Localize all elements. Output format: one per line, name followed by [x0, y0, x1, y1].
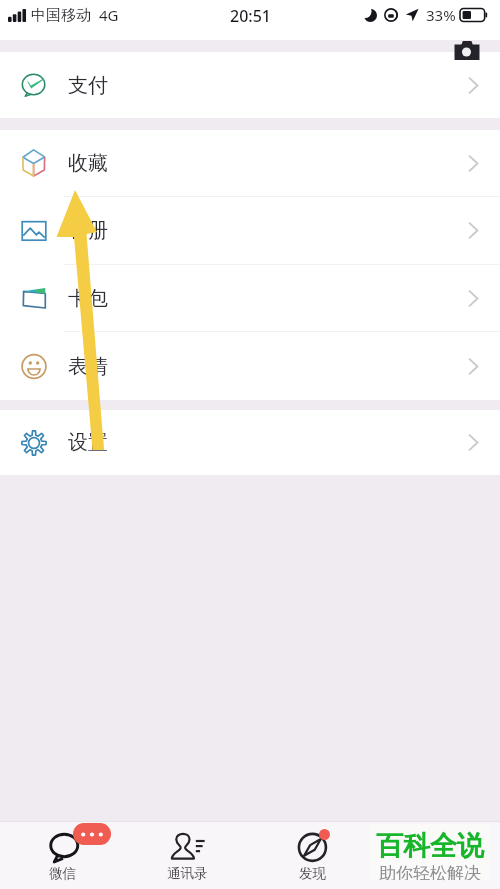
button[interactable]: 收藏 [0, 130, 500, 196]
button[interactable]: 设置 [0, 410, 500, 475]
staticText: 设置 [68, 430, 108, 455]
button[interactable]: Camera [454, 41, 480, 60]
staticText: 33% [426, 5, 456, 25]
staticText: 微信 [49, 865, 76, 882]
button[interactable]: 相册 [0, 197, 500, 264]
staticText: 4G [99, 5, 119, 25]
staticText: 通讯录 [167, 865, 208, 882]
staticText: 百科全说 [376, 829, 484, 863]
staticText: 我 [431, 865, 445, 882]
staticText: 卡包 [68, 286, 108, 311]
button[interactable]: 发现 [250, 821, 375, 889]
button[interactable]: 通讯录 [125, 821, 250, 889]
button[interactable]: 卡包 [0, 265, 500, 331]
button[interactable]: 支付 [0, 52, 500, 118]
staticText: 收藏 [68, 151, 108, 176]
button[interactable]: 表情 [0, 332, 500, 400]
button[interactable]: 我 [375, 821, 500, 889]
staticText: 20:51 [230, 5, 271, 25]
staticText: 表情 [68, 354, 108, 379]
staticText: 发现 [299, 865, 326, 882]
staticText: 相册 [68, 218, 108, 243]
button[interactable]: 微信 [0, 821, 125, 889]
staticText: 支付 [68, 73, 108, 98]
staticText: 中国移动 [31, 6, 91, 25]
staticText: 助你轻松解决 [379, 863, 481, 880]
